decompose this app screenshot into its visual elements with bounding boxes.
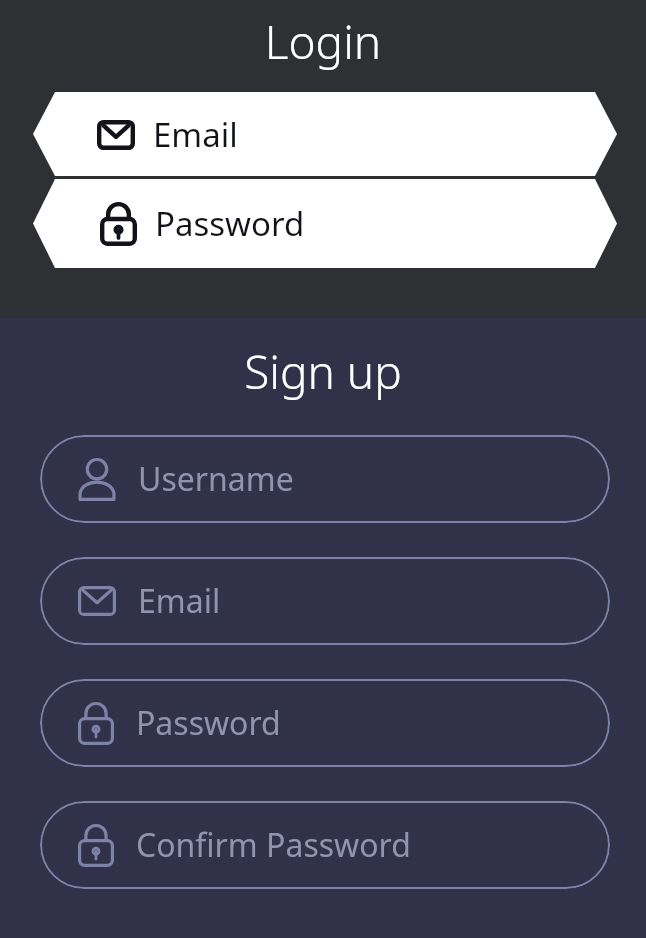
button[interactable]: Password: [40, 679, 610, 767]
staticText: Confirm Password: [136, 823, 411, 867]
staticText: Email: [138, 579, 221, 623]
staticText: Password: [155, 201, 305, 246]
staticText: Login: [0, 10, 646, 73]
button[interactable]: Email: [33, 92, 617, 176]
button[interactable]: Username: [40, 435, 610, 523]
staticText: Username: [138, 457, 294, 501]
button[interactable]: Password: [33, 179, 617, 268]
staticText: Email: [153, 112, 238, 157]
button[interactable]: Confirm Password: [40, 801, 610, 889]
staticText: Sign up: [0, 340, 646, 403]
staticText: Password: [136, 701, 281, 745]
button[interactable]: Email: [40, 557, 610, 645]
